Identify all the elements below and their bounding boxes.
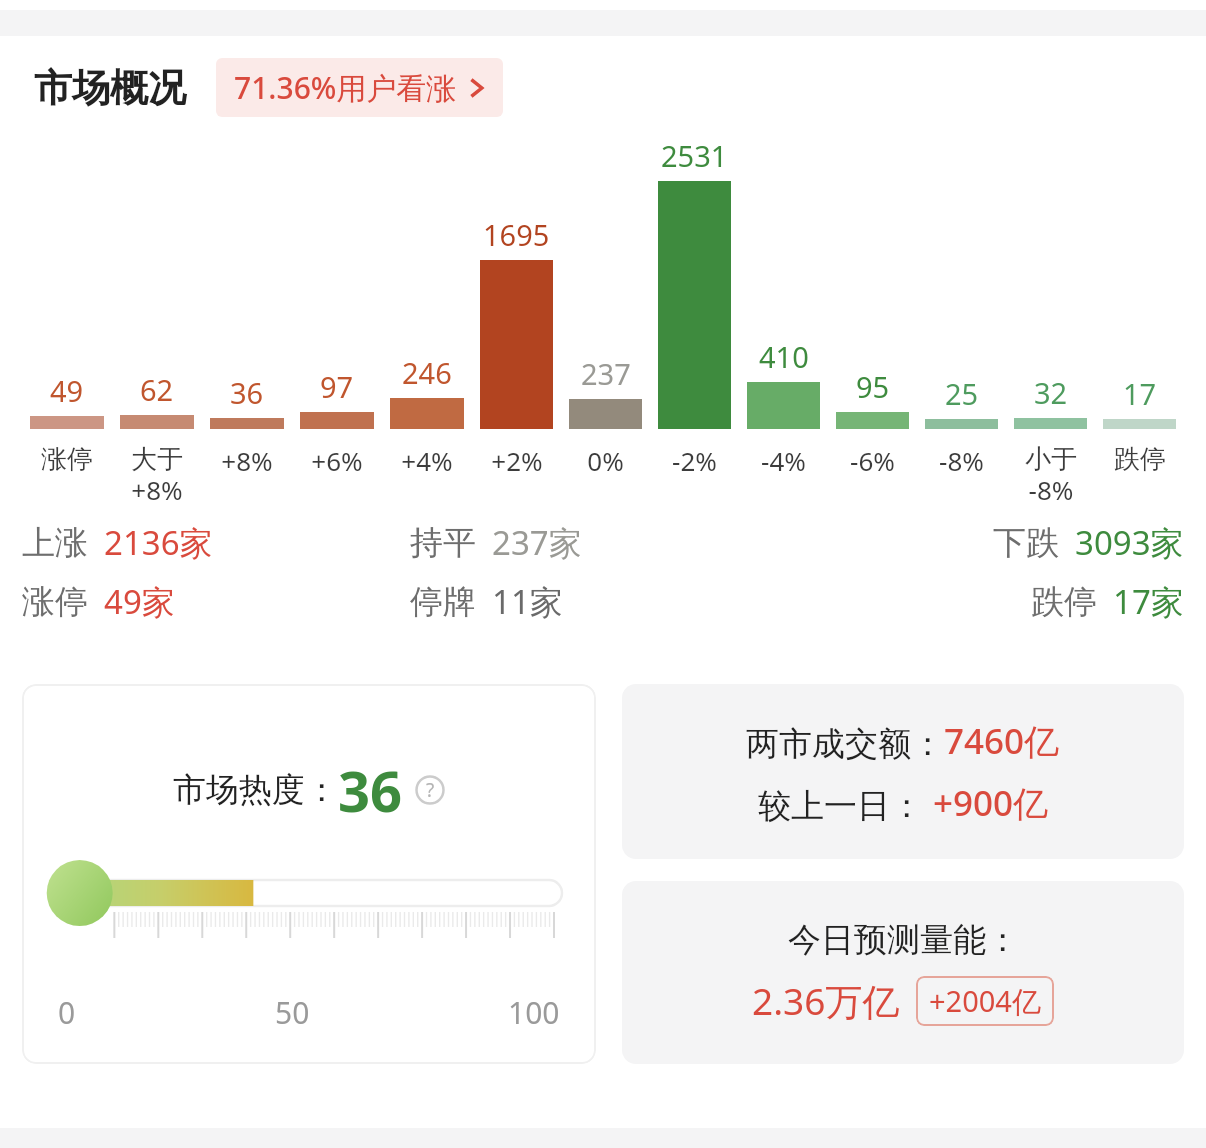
staticText: 较上一日： (758, 785, 923, 827)
staticText: 410 (759, 337, 809, 376)
staticText: 市场概况 (34, 64, 186, 112)
staticText: 0% (587, 443, 624, 478)
staticText: -2% (672, 443, 717, 478)
staticText: 17 (1123, 374, 1157, 413)
staticText: 36 (338, 752, 403, 828)
button[interactable]: 71.36%用户看涨 (216, 58, 503, 117)
staticText: +4% (401, 443, 453, 478)
staticText: 上涨 (22, 522, 88, 564)
staticText: 62 (140, 370, 174, 409)
staticText: 95 (856, 367, 890, 406)
staticText: 246 (402, 353, 452, 392)
staticText: 跌停 (1031, 581, 1097, 623)
staticText: 11家 (492, 579, 563, 624)
staticText: 涨停 (41, 443, 93, 476)
staticText: 36 (230, 373, 264, 412)
staticText: 49家 (104, 579, 175, 624)
staticText: 71.36%用户看涨 (234, 67, 457, 108)
staticText: 市场热度： (173, 769, 338, 811)
staticText: 停牌 (410, 581, 476, 623)
button[interactable]: 今日预测量能： (622, 881, 1184, 1064)
staticText: 1695 (483, 215, 550, 254)
staticText: 3093家 (1075, 520, 1184, 565)
staticText: 0 (58, 992, 76, 1033)
staticText: +8% (221, 443, 273, 478)
staticText: 50 (275, 992, 310, 1033)
staticText: -8% (939, 443, 984, 478)
staticText: 7460亿 (944, 717, 1060, 765)
staticText: 小于 -8% (1025, 443, 1077, 504)
staticText: 97 (320, 367, 354, 406)
staticText: 今日预测量能： (788, 919, 1019, 961)
staticText: 32 (1034, 373, 1068, 412)
staticText: 下跌 (993, 522, 1059, 564)
button[interactable]: 帮助 (415, 775, 445, 805)
staticText: 涨停 (22, 581, 88, 623)
staticText: 237家 (492, 520, 582, 565)
staticText: +2% (491, 443, 543, 478)
staticText: 2136家 (104, 520, 213, 565)
button[interactable]: 市场热度： (22, 684, 596, 1064)
staticText: 17家 (1113, 579, 1184, 624)
staticText: 237 (581, 354, 631, 393)
staticText: -4% (761, 443, 806, 478)
staticText: 大于 +8% (131, 443, 183, 504)
staticText: 2.36万亿 (752, 975, 900, 1026)
staticText: ? (426, 777, 435, 803)
staticText: 49 (50, 371, 84, 410)
staticText: 100 (508, 992, 560, 1033)
staticText: +6% (311, 443, 363, 478)
staticText: 持平 (410, 522, 476, 564)
staticText: 25 (945, 374, 979, 413)
staticText: 两市成交额： (746, 723, 944, 765)
staticText: 2531 (661, 136, 728, 175)
staticText: +900亿 (933, 779, 1049, 827)
staticText: +2004亿 (929, 981, 1041, 1021)
staticText: 跌停 (1114, 443, 1166, 476)
button[interactable]: 两市成交额： (622, 684, 1184, 859)
staticText: -6% (850, 443, 895, 478)
